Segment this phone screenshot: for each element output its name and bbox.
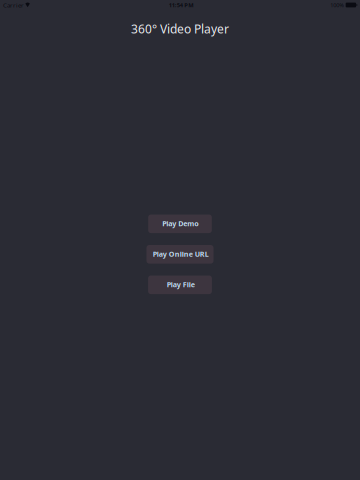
button[interactable]: Play File: [148, 275, 212, 294]
staticText: Play Demo: [162, 218, 199, 228]
staticText: PM: [184, 1, 193, 9]
button[interactable]: Play Online URL: [146, 245, 213, 264]
staticText: Carrier: [3, 1, 24, 9]
button[interactable]: Play Demo: [148, 214, 212, 233]
staticText: 360° Video Player: [131, 21, 229, 37]
staticText: Play Online URL: [153, 248, 209, 259]
staticText: Play File: [167, 279, 195, 289]
staticText: 11:54: [169, 1, 183, 9]
staticText: 100%: [330, 1, 344, 9]
